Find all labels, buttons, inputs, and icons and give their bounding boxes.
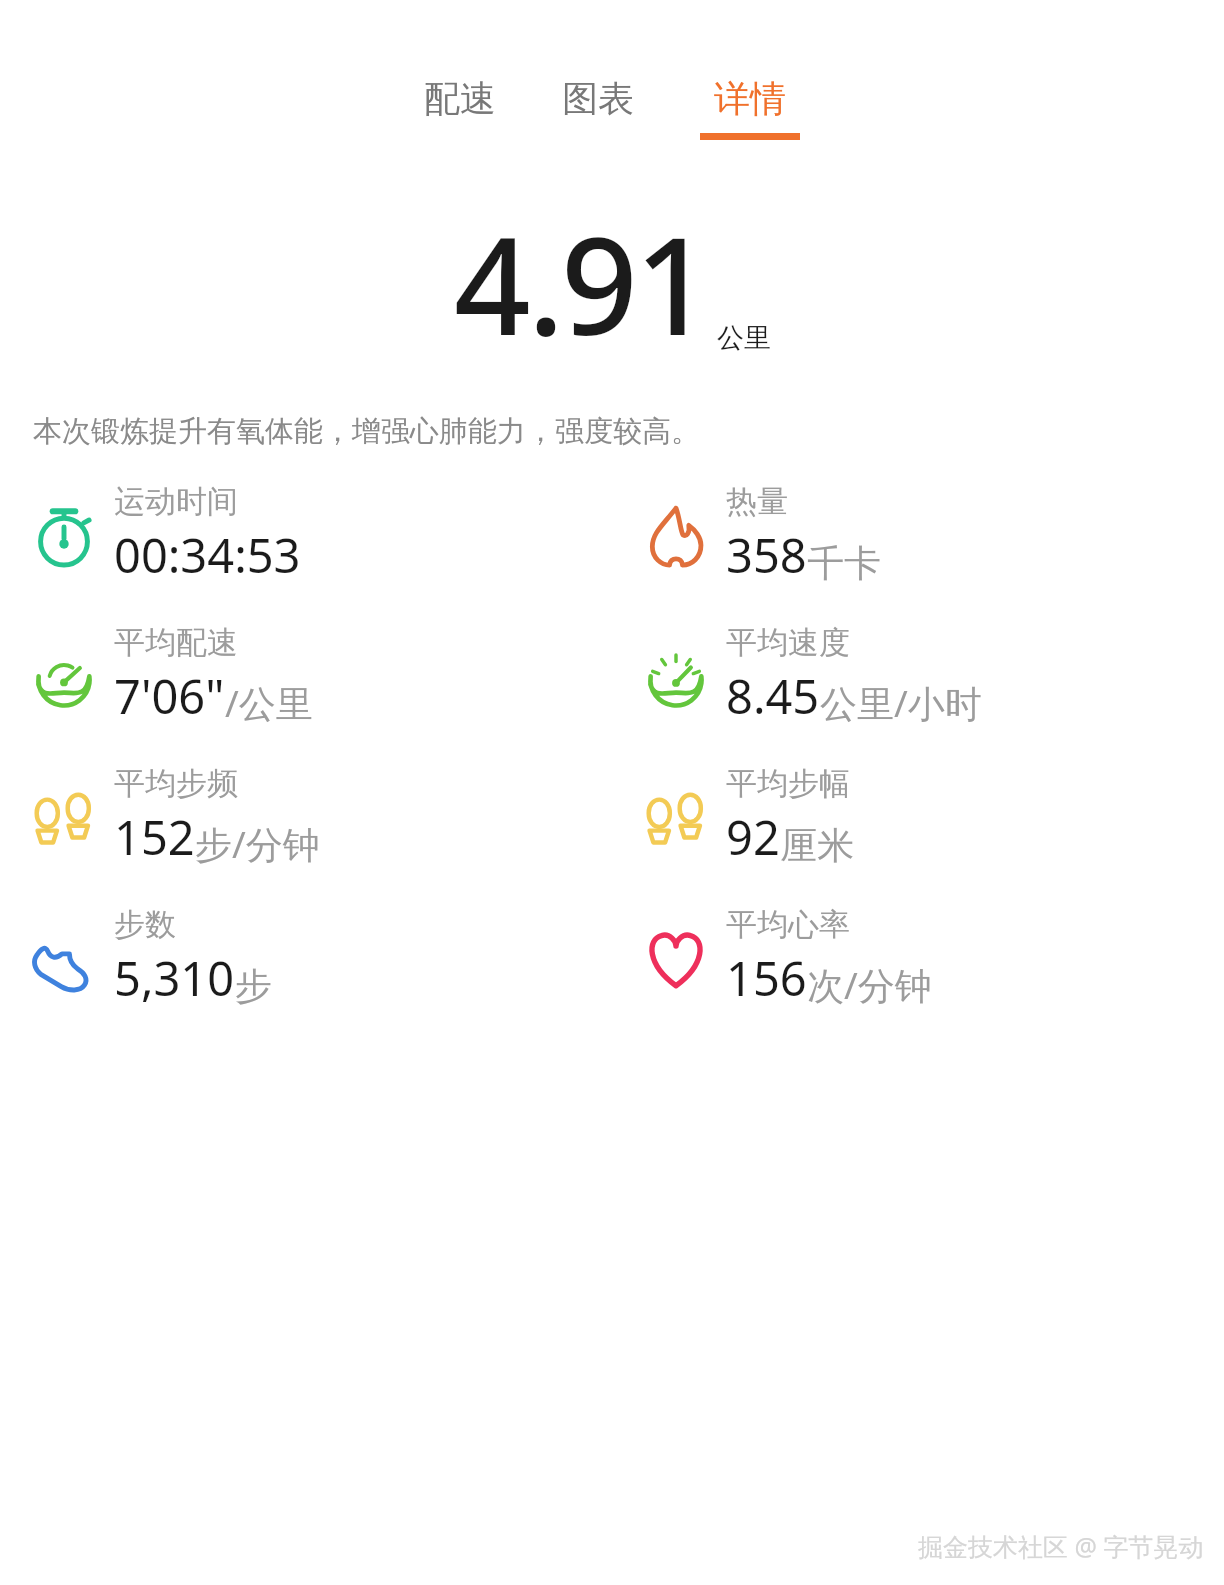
staticText: 156 [726, 946, 807, 1010]
staticText: 152 [114, 805, 195, 869]
staticText: 平均步频 [114, 764, 238, 803]
staticText: 公里 [717, 321, 771, 355]
button[interactable]: Steps cadence [0, 764, 612, 869]
staticText: 公里/小时 [820, 677, 982, 728]
button[interactable]: Duration [0, 482, 612, 587]
button[interactable]: Average pace [0, 623, 612, 728]
staticText: 8.45 [726, 664, 820, 728]
staticText: 平均心率 [726, 905, 850, 944]
staticText: 平均速度 [726, 623, 850, 662]
staticText: 平均配速 [114, 623, 238, 662]
other: Steps cadence [33, 786, 95, 848]
staticText: 5,310 [114, 946, 235, 1010]
staticText: 图表 [562, 76, 634, 121]
staticText: 92 [726, 805, 780, 869]
button[interactable]: Step count [0, 905, 612, 1010]
other: Duration [31, 502, 97, 568]
staticText: 运动时间 [114, 482, 238, 521]
button[interactable]: Steps cadence [612, 764, 1224, 869]
staticText: 平均步幅 [726, 764, 850, 803]
button[interactable]: Average speed [612, 623, 1224, 728]
staticText: 详情 [714, 76, 786, 121]
button[interactable]: Average heart rate [612, 905, 1224, 1010]
other: Steps cadence [645, 786, 707, 848]
staticText: 本次锻炼提升有氧体能，增强心肺能力，强度较高。 [33, 413, 700, 450]
button[interactable]: Calories [612, 482, 1224, 587]
staticText: 步/分钟 [195, 818, 320, 869]
button[interactable]: 配速 [414, 72, 506, 144]
other: Average heart rate [643, 925, 709, 991]
staticText: 步 [235, 963, 272, 1010]
other: Calories [644, 503, 708, 567]
staticText: 步数 [114, 905, 176, 944]
staticText: 配速 [424, 76, 496, 121]
button[interactable]: 图表 [552, 72, 644, 144]
staticText: 00:34:53 [114, 523, 301, 587]
other: Average pace [32, 644, 96, 708]
other: Average speed [644, 644, 708, 708]
staticText: 热量 [726, 482, 788, 521]
other: Step count [30, 924, 98, 992]
staticText: /公里 [225, 677, 313, 728]
staticText: 4.91 [454, 192, 709, 375]
staticText: 次/分钟 [807, 959, 932, 1010]
staticText: 掘金技术社区 @ 字节晃动 [918, 1529, 1204, 1563]
staticText: 7'06" [114, 664, 225, 728]
staticText: 厘米 [780, 822, 854, 869]
staticText: 千卡 [807, 540, 881, 587]
staticText: 358 [726, 523, 807, 587]
button[interactable]: 详情 [690, 72, 810, 144]
